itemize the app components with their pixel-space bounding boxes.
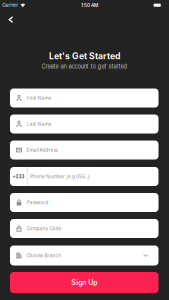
staticText: Carrier <box>2 2 18 8</box>
staticText: Password <box>27 200 49 205</box>
staticText: Company Code <box>27 226 62 231</box>
staticText: Last Name <box>27 121 52 127</box>
staticText: +233 <box>12 174 24 179</box>
button[interactable]: Choose Branch <box>10 245 158 265</box>
staticText: Email Address <box>27 147 58 153</box>
staticText: Sign Up <box>71 278 97 287</box>
staticText: 1:50 AM <box>81 2 98 8</box>
button[interactable]: First Name <box>10 88 158 107</box>
button[interactable]: Sign Up <box>10 272 158 293</box>
staticText: First Name <box>27 95 52 101</box>
button[interactable]: Back <box>6 16 15 23</box>
button[interactable]: Email Address <box>10 140 158 159</box>
button[interactable]: Password <box>10 193 158 212</box>
staticText: Choose Branch <box>27 253 62 258</box>
staticText: Let's Get Started <box>49 51 120 61</box>
button[interactable]: Company Code <box>10 219 158 238</box>
staticText: Create an account to get started <box>41 63 127 70</box>
button[interactable]: +233 <box>10 167 158 186</box>
staticText: Phone Number (e.g 055...) <box>30 174 90 179</box>
button[interactable]: Last Name <box>10 114 158 133</box>
